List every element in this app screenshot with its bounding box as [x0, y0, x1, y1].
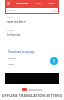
staticText: Download Language: [8, 50, 35, 54]
button[interactable]: Menu: [6, 0, 11, 7]
staticText: Hindi: [7, 16, 13, 19]
staticText: MORE: [48, 2, 55, 5]
staticText: Hindi: [8, 62, 14, 65]
staticText: CHAT: [35, 2, 41, 5]
button[interactable]: MORE: [44, 0, 58, 7]
button[interactable]: English: [8, 56, 56, 60]
staticText: English: [8, 56, 17, 59]
button[interactable]: Enter text: [6, 8, 58, 13]
button[interactable]: Voice input: [50, 57, 58, 65]
staticText: TRANSLATE: [16, 2, 28, 5]
button[interactable]: Hindi: [8, 62, 56, 66]
staticText: Enter text: [7, 9, 17, 12]
button[interactable]: English: [7, 29, 57, 38]
button[interactable]: CHAT: [32, 0, 44, 7]
staticText: नमस्ते आप कैसे: [7, 20, 23, 24]
staticText: OFFLINE TRANSLATION SETTING: [0, 93, 64, 98]
staticText: English: [7, 29, 15, 32]
button[interactable]: Hindi: [7, 16, 57, 25]
button[interactable]: TRANSLATE: [11, 0, 32, 7]
staticText: hi how are: [7, 33, 21, 37]
